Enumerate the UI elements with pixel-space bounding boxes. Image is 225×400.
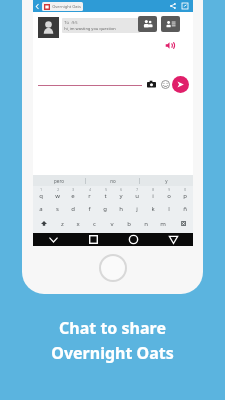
staticText: ?123 <box>41 236 50 241</box>
staticText: j <box>136 205 138 213</box>
staticText: e <box>71 192 75 200</box>
staticText: g <box>103 205 107 213</box>
staticText: t <box>104 192 107 200</box>
staticText: 9 <box>168 188 170 192</box>
staticText: y <box>165 178 168 184</box>
button[interactable]: Backspace <box>171 216 193 231</box>
button[interactable]: 7 <box>129 186 145 201</box>
staticText: o <box>167 192 171 200</box>
staticText: 5 <box>105 188 107 192</box>
button[interactable]: Tú :9:5 <box>62 18 140 33</box>
staticText: 1 <box>40 188 42 192</box>
button[interactable]: x <box>70 216 86 231</box>
button[interactable]: 1 <box>33 186 49 201</box>
button[interactable]: d <box>65 201 81 216</box>
staticText: m <box>160 220 166 228</box>
staticText: ñ <box>183 205 187 213</box>
button[interactable]: Share <box>167 0 179 12</box>
button[interactable]: , <box>58 231 72 245</box>
staticText: hi, im wasting you question <box>64 26 116 31</box>
staticText: q <box>39 192 43 200</box>
staticText: u <box>135 192 139 200</box>
button[interactable]: no <box>86 175 139 186</box>
button[interactable]: f <box>81 201 97 216</box>
staticText: a <box>39 205 43 213</box>
button[interactable]: m <box>154 216 171 231</box>
staticText: f <box>88 205 91 213</box>
button[interactable]: . <box>154 231 168 245</box>
other: Home button <box>99 254 127 282</box>
staticText: 7 <box>136 188 138 192</box>
button[interactable]: n <box>137 216 154 231</box>
button[interactable]: 2 <box>49 186 65 201</box>
staticText: w <box>55 192 60 200</box>
staticText: r <box>88 192 91 200</box>
button[interactable]: Back <box>33 0 42 12</box>
staticText: no <box>110 178 116 184</box>
button[interactable]: Play audio <box>161 37 177 53</box>
staticText: h <box>119 205 123 213</box>
staticText: 6 <box>120 188 122 192</box>
button[interactable]: Hide keyboard <box>33 233 73 246</box>
button[interactable]: Space <box>72 234 154 242</box>
button[interactable]: 4 <box>81 186 97 201</box>
staticText: d <box>71 205 75 213</box>
staticText: z <box>61 220 64 228</box>
staticText: Overnight Oats <box>52 4 81 9</box>
staticText: 3 <box>72 188 74 192</box>
button[interactable]: Send <box>172 76 189 93</box>
button[interactable]: Shift <box>33 216 54 231</box>
staticText: y <box>119 192 123 200</box>
button[interactable]: Group members <box>138 16 157 32</box>
staticText: 2 <box>57 188 59 192</box>
button[interactable]: c <box>86 216 103 231</box>
button[interactable]: ?123 <box>33 231 58 245</box>
staticText: pero <box>54 178 64 184</box>
button[interactable]: Export <box>179 0 191 12</box>
button[interactable]: j <box>129 201 145 216</box>
button[interactable]: Recent apps <box>73 233 113 246</box>
button[interactable]: Home <box>113 233 153 246</box>
button[interactable]: a <box>33 201 49 216</box>
staticText: p <box>183 192 187 200</box>
button[interactable]: ñ <box>177 201 193 216</box>
staticText: v <box>110 220 114 228</box>
staticText: Chat to share <box>59 317 166 339</box>
staticText: 4 <box>89 188 91 192</box>
staticText: b <box>127 220 131 228</box>
button[interactable]: Contact avatar <box>38 17 59 38</box>
button[interactable]: b <box>120 216 137 231</box>
button[interactable]: 5 <box>97 186 113 201</box>
staticText: Tú :9:5 <box>64 20 78 25</box>
staticText: 0 <box>184 188 186 192</box>
button[interactable]: Back <box>153 233 193 246</box>
button[interactable]: 0 <box>177 186 193 201</box>
button[interactable]: k <box>145 201 161 216</box>
button[interactable]: v <box>103 216 120 231</box>
button[interactable]: Overnight Oats <box>42 2 83 11</box>
button[interactable]: y <box>140 175 193 186</box>
button[interactable]: z <box>54 216 70 231</box>
staticText: k <box>151 205 155 213</box>
button[interactable]: Emoji <box>159 78 171 90</box>
staticText: 8 <box>152 188 154 192</box>
button[interactable]: l <box>161 201 177 216</box>
button[interactable]: h <box>113 201 129 216</box>
button[interactable]: Emoji keyboard <box>168 231 193 245</box>
button[interactable]: g <box>97 201 113 216</box>
staticText: l <box>168 205 170 213</box>
button[interactable]: 3 <box>65 186 81 201</box>
staticText: i <box>152 192 154 200</box>
staticText: s <box>56 205 59 213</box>
button[interactable]: 9 <box>161 186 177 201</box>
button[interactable]: pero <box>33 175 85 186</box>
button[interactable]: 8 <box>145 186 161 201</box>
button[interactable]: Camera <box>145 78 157 90</box>
button[interactable]: s <box>49 201 65 216</box>
button[interactable]: Contact details <box>161 16 180 32</box>
staticText: Overnight Oats <box>51 342 174 364</box>
button[interactable]: 6 <box>113 186 129 201</box>
staticText: n <box>144 220 148 228</box>
